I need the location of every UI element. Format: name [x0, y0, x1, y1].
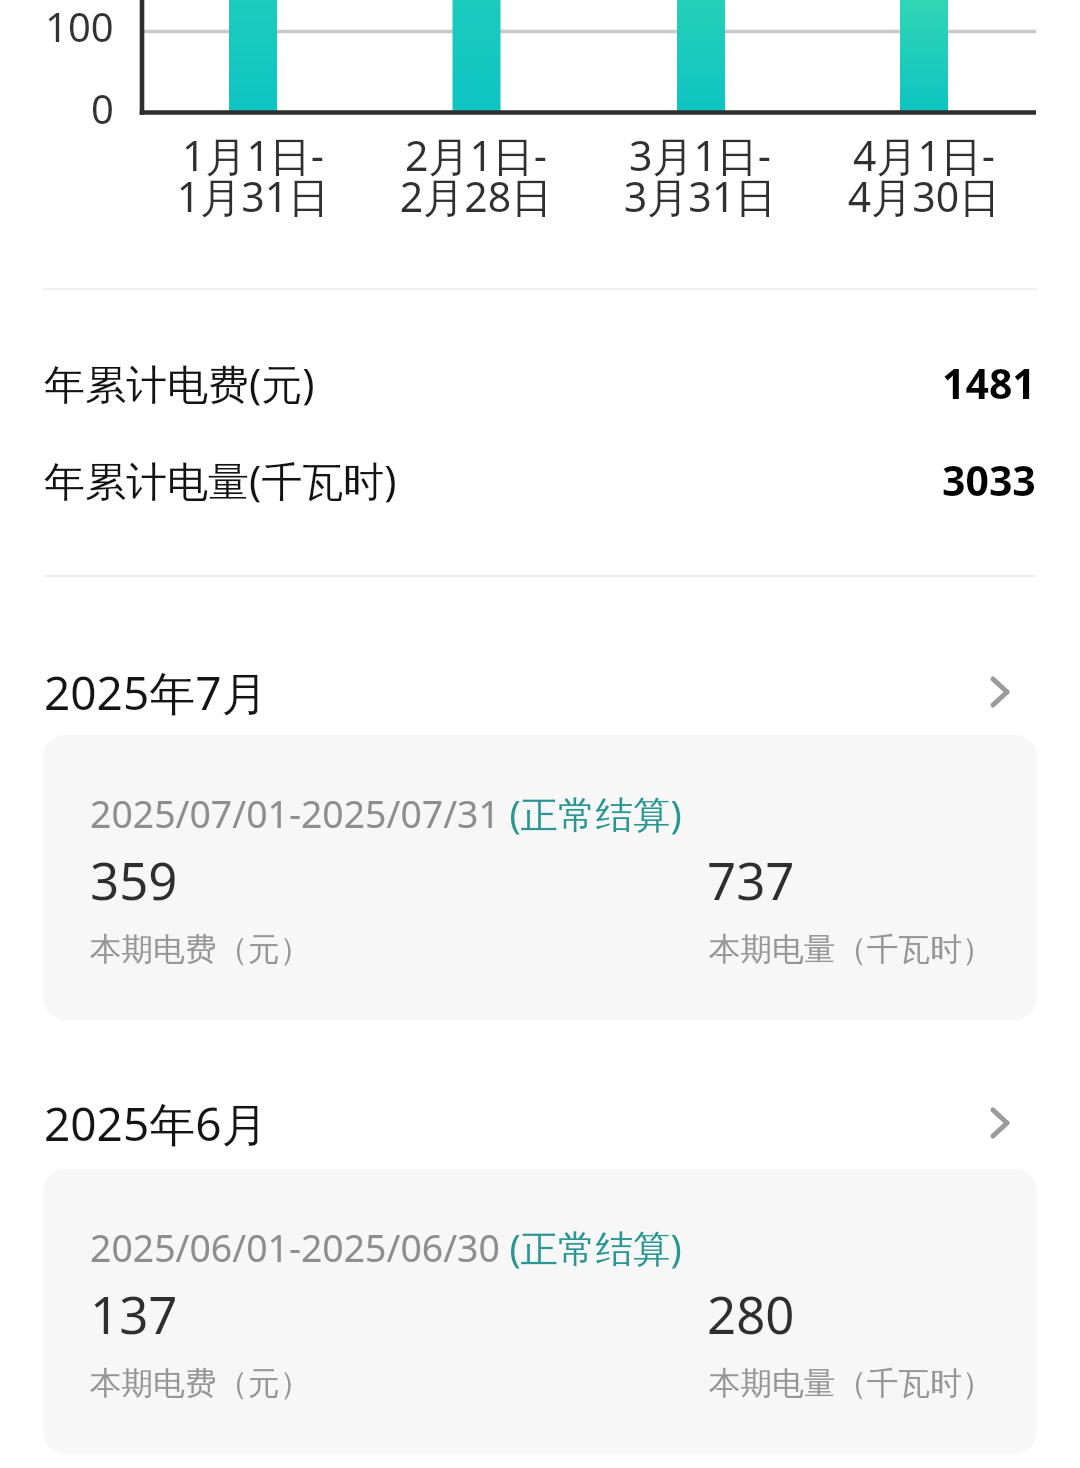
- button[interactable]: 2025/07/01-2025/07/31 (正常结算): [43, 735, 1037, 1020]
- staticText: 年累计电费(元): [44, 355, 315, 411]
- staticText: 本期电费（元）: [90, 1364, 312, 1404]
- staticText: 0: [91, 81, 114, 135]
- button[interactable]: 2025年7月: [0, 661, 1080, 723]
- staticText: 本期电量（千瓦时）: [709, 930, 994, 970]
- other: 查看 2025年6月 详情: [978, 1101, 1022, 1145]
- staticText: 本期电量（千瓦时）: [709, 1364, 994, 1404]
- staticText: 2月1日- 2月28日: [356, 127, 596, 225]
- staticText: 2025/06/01-2025/06/30 (正常结算): [90, 1222, 682, 1273]
- staticText: 年累计电量(千瓦时): [44, 452, 397, 508]
- staticText: 3033: [942, 452, 1036, 508]
- staticText: 2025年6月: [44, 1092, 268, 1154]
- staticText: 本期电费（元）: [90, 930, 312, 970]
- staticText: 100: [45, 0, 114, 53]
- staticText: 1月1日- 1月31日: [133, 127, 373, 225]
- staticText: 2025/07/01-2025/07/31 (正常结算): [90, 788, 682, 839]
- staticText: 1481: [942, 355, 1036, 411]
- staticText: 137: [90, 1279, 178, 1348]
- staticText: 737: [707, 845, 795, 914]
- staticText: 280: [707, 1279, 795, 1348]
- button[interactable]: 2025年6月: [0, 1092, 1080, 1154]
- staticText: 4月1日- 4月30日: [804, 127, 1044, 225]
- staticText: 3月1日- 3月31日: [580, 127, 820, 225]
- other: 查看 2025年7月 详情: [978, 670, 1022, 714]
- button[interactable]: 2025/06/01-2025/06/30 (正常结算): [43, 1169, 1037, 1454]
- staticText: 359: [90, 845, 178, 914]
- staticText: 2025年7月: [44, 661, 268, 723]
